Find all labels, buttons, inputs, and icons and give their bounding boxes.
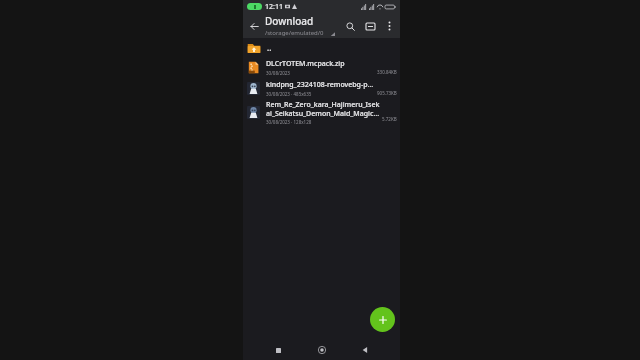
staticText: 30/08/2023 · 485x635 [266,91,312,97]
staticText: /storage/emulated/0 [265,29,324,37]
button[interactable]: Download [265,14,340,37]
button[interactable]: Search [340,16,360,36]
staticText: 905.73KB [377,90,397,96]
button[interactable]: More options [380,17,398,35]
staticText: 5.72KB [382,116,397,122]
button[interactable]: .. [243,38,400,57]
staticText: 12:11 [265,2,283,12]
staticText: .. [267,42,272,53]
staticText: 30/08/2023 · 128x128 [266,119,312,125]
staticText: DLCrTOTEM.mcpack.zip [266,59,345,69]
button[interactable]: Back [243,15,265,37]
button[interactable]: Change view [360,16,380,36]
button[interactable]: kindpng_2324108-removebg-preview.png [243,78,400,99]
staticText: Download [265,14,314,28]
staticText: Rem_Re_Zero_kara_Hajimeru_Isekai_Seikats… [266,100,380,118]
staticText: 330.84KB [377,69,397,75]
button[interactable]: Add [370,307,395,332]
button[interactable]: Recents [269,341,287,359]
button[interactable]: Rem_Re_Zero_kara_Hajimeru_Isekai_Seikats… [243,99,400,125]
button[interactable]: Back [356,341,374,359]
staticText: 30/08/2023 [266,70,290,76]
button[interactable]: Home [313,341,331,359]
button[interactable]: DLCrTOTEM.mcpack.zip [243,57,400,78]
staticText: kindpng_2324108-removebg-preview.png [266,80,375,90]
